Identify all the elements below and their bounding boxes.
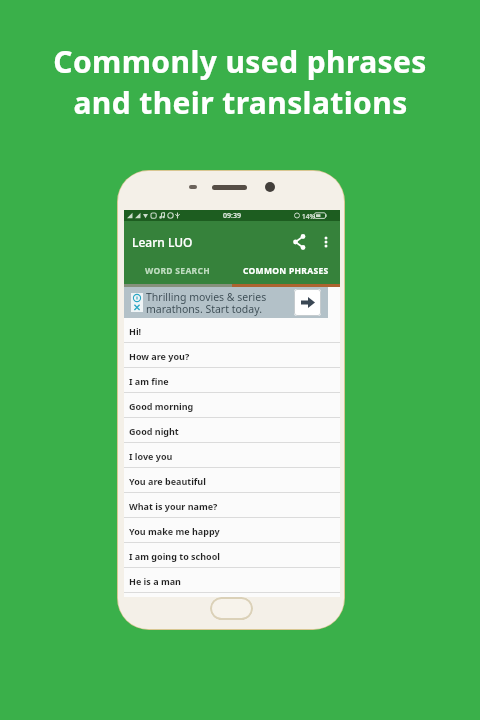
button[interactable] [210,597,253,620]
staticText: You are beautiful [129,475,206,487]
button[interactable]: He is a man [124,568,340,593]
button[interactable]: Good night [124,418,340,443]
button[interactable]: Hi! [124,318,340,343]
staticText: Thrilling movies & series [146,290,267,304]
staticText: Good night [129,425,179,437]
staticText: He is a man [129,575,181,587]
staticText: I am fine [129,375,169,387]
button[interactable]: I am fine [124,368,340,393]
staticText: and their translations [73,82,408,123]
staticText: marathons. Start today. [146,302,262,316]
button[interactable]: COMMON PHRASES [232,258,340,284]
staticText: I am going to school [129,550,221,562]
button[interactable]: You make me happy [124,518,340,543]
button[interactable]: How are you? [124,343,340,368]
staticText: Hi! [129,325,142,337]
button[interactable] [318,229,334,255]
staticText: I love you [129,450,173,462]
button[interactable]: You are beautiful [124,468,340,493]
button[interactable]: I love you [124,443,340,468]
staticText: You make me happy [129,525,220,537]
button[interactable]: WORD SEARCH [124,258,232,284]
staticText: Learn LUO [132,234,193,250]
staticText: WORD SEARCH [145,265,211,277]
staticText: Good morning [129,400,194,412]
staticText: Commonly used phrases [53,41,427,82]
button[interactable]: Good morning [124,393,340,418]
staticText: What is your name? [129,500,218,512]
staticText: How are you? [129,350,190,362]
button[interactable] [294,289,321,316]
staticText: 14% [302,212,315,221]
button[interactable]: I am going to school [124,543,340,568]
staticText: 09:39 [223,211,241,221]
button[interactable]: What is your name? [124,493,340,518]
button[interactable] [288,229,314,255]
staticText: COMMON PHRASES [243,265,329,277]
